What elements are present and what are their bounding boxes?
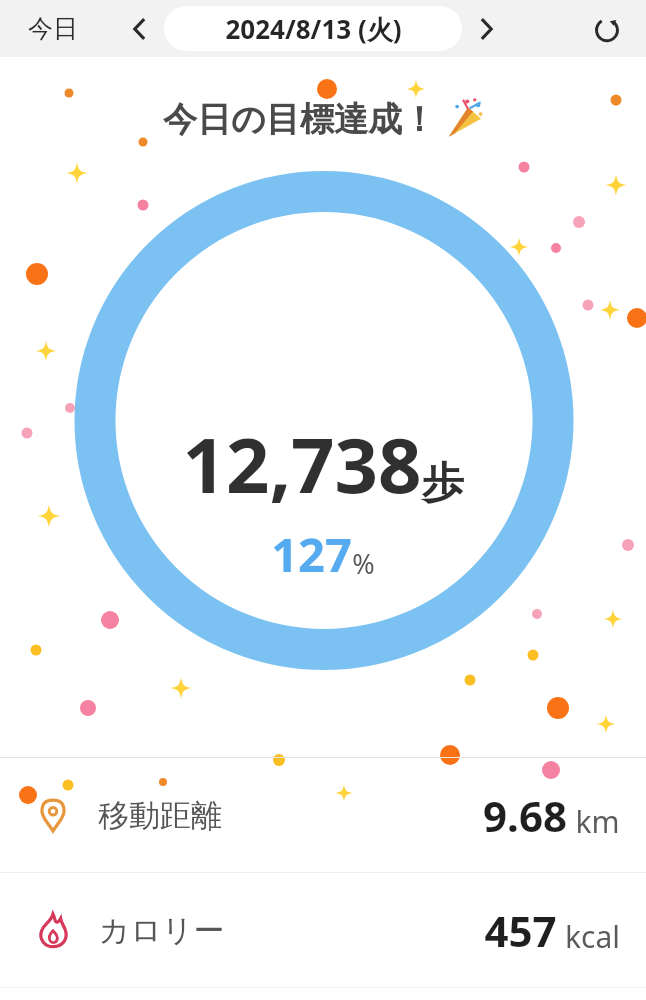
button[interactable]: Next day xyxy=(466,9,506,49)
button[interactable]: Previous day xyxy=(120,9,160,49)
staticText: 9.68 xyxy=(483,787,567,844)
button[interactable]: Refresh xyxy=(584,6,630,52)
staticText: 歩 xyxy=(422,457,464,510)
staticText: % xyxy=(352,545,375,582)
staticText: 今日 xyxy=(28,13,78,44)
button[interactable]: カロリー xyxy=(0,873,646,987)
button[interactable]: 移動距離 xyxy=(0,758,646,872)
button[interactable]: 今日 xyxy=(16,7,90,50)
staticText: 457 xyxy=(484,902,557,959)
staticText: km xyxy=(575,801,620,842)
button[interactable]: 2024/8/13 (火) xyxy=(164,6,462,51)
staticText: 今日の目標達成！ xyxy=(163,98,436,141)
staticText: 12,738 xyxy=(182,412,422,516)
staticText: 2024/8/13 (火) xyxy=(225,11,402,47)
staticText: 移動距離 xyxy=(98,796,222,835)
staticText: kcal xyxy=(565,916,620,957)
staticText: カロリー xyxy=(98,911,225,950)
staticText: 127 xyxy=(271,522,352,586)
